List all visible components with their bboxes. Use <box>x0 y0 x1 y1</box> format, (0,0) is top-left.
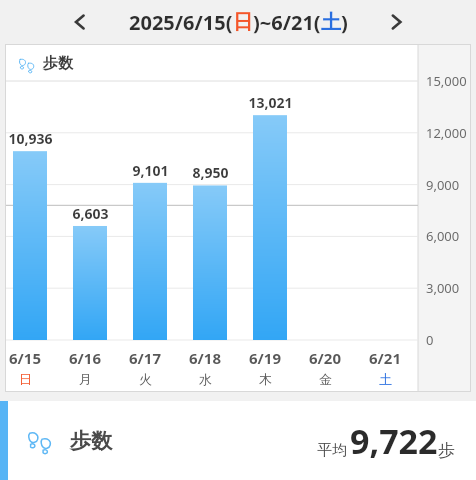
staticText: 6,603 <box>72 204 109 223</box>
staticText: 日 <box>233 10 253 35</box>
staticText: 9,000 <box>426 176 460 194</box>
button[interactable]: 歩数 <box>5 44 471 392</box>
staticText: 6/18 <box>189 348 221 368</box>
staticText: 歩数 <box>70 428 112 454</box>
staticText: 金 <box>319 371 332 387</box>
staticText: 0 <box>426 331 434 349</box>
staticText: 水 <box>199 371 212 387</box>
staticText: 6/19 <box>249 348 281 368</box>
staticText: 9,722 <box>350 418 438 464</box>
staticText: 土 <box>321 10 341 35</box>
staticText: 10,936 <box>8 129 53 148</box>
staticText: 12,000 <box>426 124 467 142</box>
staticText: 火 <box>139 371 152 387</box>
staticText: )~6/21( <box>253 9 321 36</box>
staticText: 3,000 <box>426 279 460 297</box>
staticText: 6/20 <box>309 348 341 368</box>
button[interactable]: 前の週 <box>58 0 102 44</box>
staticText: 月 <box>79 371 92 387</box>
button[interactable]: 歩数 <box>0 401 476 480</box>
staticText: 6,000 <box>426 227 460 245</box>
staticText: 木 <box>259 371 272 387</box>
staticText: ) <box>341 9 348 36</box>
staticText: 平均 <box>317 441 347 460</box>
staticText: 6/21 <box>369 348 401 368</box>
button[interactable]: 次の週 <box>374 0 418 44</box>
staticText: 歩 <box>438 440 455 461</box>
staticText: 15,000 <box>426 72 467 90</box>
staticText: 2025/6/15( <box>129 9 233 36</box>
staticText: 9,101 <box>132 161 169 180</box>
staticText: 土 <box>379 371 392 387</box>
staticText: 13,021 <box>248 93 293 112</box>
staticText: 日 <box>19 371 32 387</box>
staticText: 6/17 <box>129 348 161 368</box>
staticText: 6/16 <box>69 348 101 368</box>
staticText: 6/15 <box>9 348 41 368</box>
staticText: 8,950 <box>192 163 229 182</box>
staticText: 歩数 <box>43 54 73 73</box>
